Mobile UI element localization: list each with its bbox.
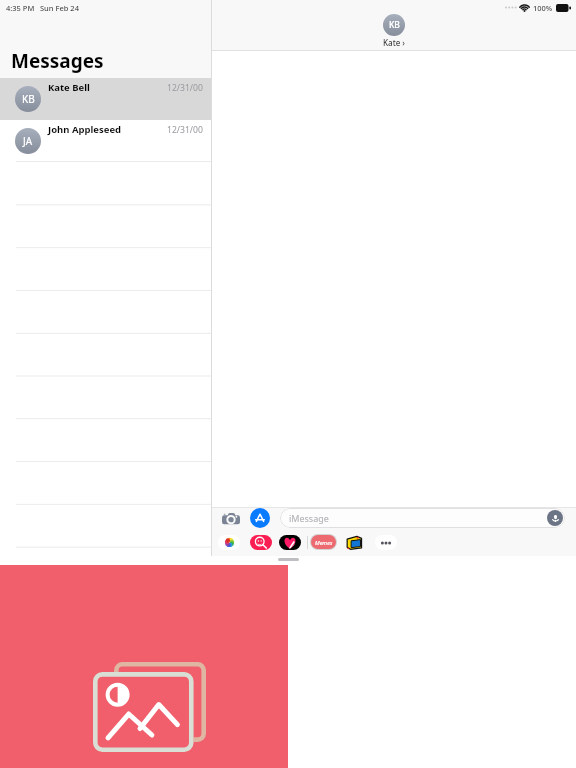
staticText: 4:35 PM [6,3,35,13]
button[interactable]: App Store [250,508,270,528]
button[interactable]: More [375,535,397,550]
staticText: Kate › [383,37,405,48]
staticText: Sun Feb 24 [40,3,79,13]
button[interactable]: iMessage [280,508,565,528]
button[interactable]: Camera [220,508,242,528]
button[interactable]: JA [0,120,211,162]
staticText: John Appleseed [48,123,122,136]
staticText: Memes [315,539,333,546]
staticText: 100% [533,3,553,13]
button[interactable]: Memes [310,534,337,550]
staticText: 12/31/00 [167,124,203,136]
button[interactable]: Stickers [345,534,363,551]
staticText: Messages [11,48,104,74]
staticText: 12/31/00 [167,82,203,94]
staticText: iMessage [289,512,329,524]
staticText: KB [389,19,400,31]
staticText: KB [22,92,35,106]
staticText: JA [23,134,33,148]
button[interactable]: Photos [218,535,240,550]
button[interactable]: Digital Touch [279,535,301,550]
button[interactable]: KB [0,78,211,120]
button[interactable]: Images [250,535,272,550]
staticText: Kate Bell [48,81,90,94]
